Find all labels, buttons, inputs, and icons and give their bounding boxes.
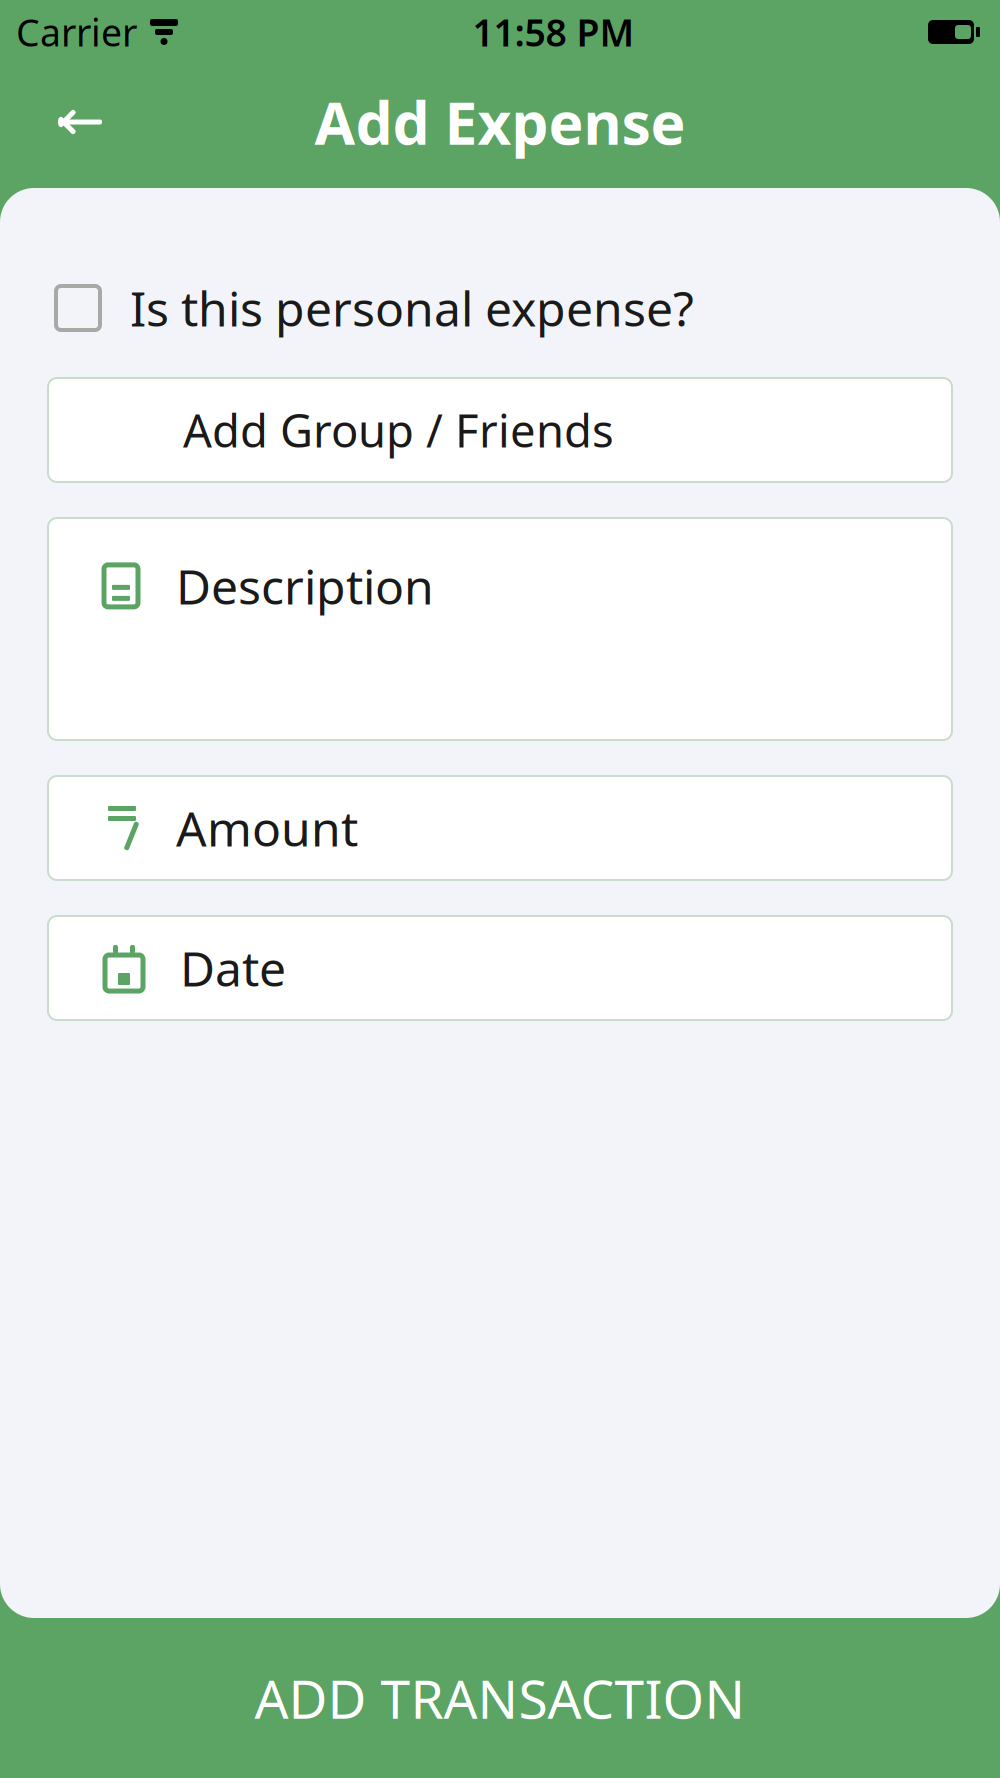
button[interactable]: Date bbox=[0, 916, 1000, 1020]
button[interactable]: Add Group / Friends bbox=[0, 378, 1000, 482]
button[interactable]: ADD TRANSACTION bbox=[0, 1618, 1000, 1778]
staticText: Add Group / Friends bbox=[183, 400, 614, 460]
button[interactable]: Amount bbox=[0, 776, 1000, 880]
staticText: Add Expense bbox=[314, 83, 685, 161]
button[interactable]: Description bbox=[0, 518, 1000, 740]
staticText: Amount bbox=[176, 796, 358, 860]
staticText: Is this personal expense? bbox=[130, 276, 694, 340]
staticText: ADD TRANSACTION bbox=[254, 1663, 745, 1733]
staticText: Carrier bbox=[16, 7, 137, 57]
staticText: 11:58 PM bbox=[472, 7, 634, 57]
staticText: Date bbox=[180, 936, 286, 1000]
staticText: Description bbox=[176, 554, 434, 618]
button[interactable]: Is this personal expense? bbox=[0, 258, 1000, 358]
button[interactable]: Back bbox=[42, 84, 118, 160]
